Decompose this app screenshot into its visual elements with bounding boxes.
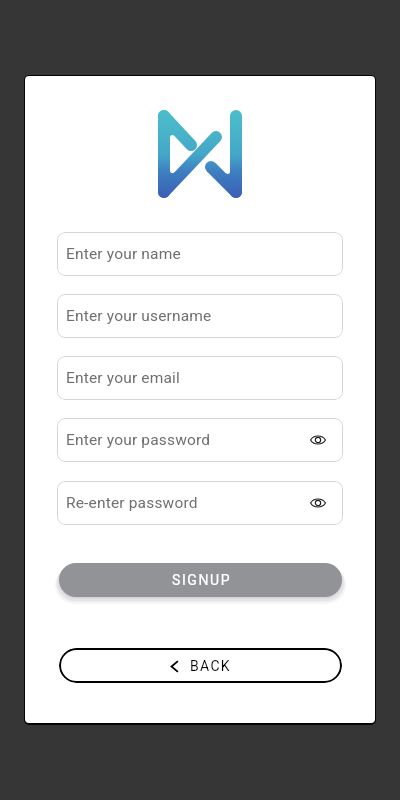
button[interactable]: Enter your password: [57, 418, 343, 462]
staticText: Re-enter password: [66, 494, 198, 512]
staticText: Enter your username: [66, 307, 212, 325]
button[interactable]: BACK: [59, 648, 342, 683]
staticText: Enter your name: [66, 245, 181, 263]
button[interactable]: Re-enter password: [57, 481, 343, 525]
staticText: Enter your password: [66, 431, 211, 449]
button[interactable]: Enter your email: [57, 356, 343, 400]
button[interactable]: Enter your username: [57, 294, 343, 338]
button[interactable]: SIGNUP: [59, 563, 342, 597]
button[interactable]: Enter your name: [57, 232, 343, 276]
staticText: BACK: [190, 658, 231, 674]
staticText: SIGNUP: [172, 572, 232, 588]
staticText: Enter your email: [66, 369, 180, 387]
button[interactable]: Toggle password visibility: [303, 425, 333, 455]
button[interactable]: Toggle password visibility: [303, 488, 333, 518]
